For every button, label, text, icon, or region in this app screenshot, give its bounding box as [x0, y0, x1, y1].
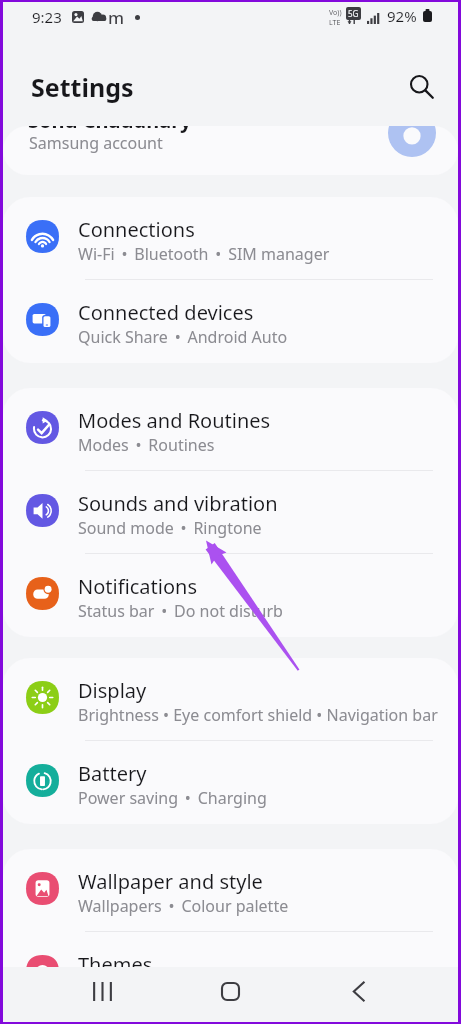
- staticText: Status bar • Do not disturb: [78, 600, 283, 622]
- button[interactable]: Themes: [3, 932, 458, 967]
- staticText: Modes and Routines: [78, 407, 271, 434]
- staticText: Quick Share • Android Auto: [78, 326, 288, 348]
- button[interactable]: Notifications: [3, 554, 458, 637]
- staticText: Themes: [78, 951, 153, 967]
- button[interactable]: Recent apps: [78, 967, 126, 1015]
- button[interactable]: Search: [397, 62, 445, 110]
- staticText: Connections: [78, 216, 195, 243]
- staticText: Wi-Fi • Bluetooth • SIM manager: [78, 243, 330, 265]
- staticText: 9:23: [32, 7, 62, 27]
- staticText: Sound mode • Ringtone: [78, 517, 262, 539]
- button[interactable]: Modes and Routines: [3, 388, 458, 471]
- staticText: Connected devices: [78, 299, 254, 326]
- staticText: Wallpapers • Colour palette: [78, 895, 289, 917]
- staticText: Vo)): [329, 8, 342, 18]
- button[interactable]: Display: [3, 658, 458, 741]
- staticText: m: [108, 6, 125, 29]
- button[interactable]: Connected devices: [3, 280, 458, 363]
- staticText: Samsung account: [29, 132, 163, 154]
- staticText: Wallpaper and style: [78, 868, 263, 895]
- staticText: Modes • Routines: [78, 434, 215, 456]
- button[interactable]: Sounds and vibration: [3, 471, 458, 554]
- button[interactable]: Home: [206, 967, 254, 1015]
- staticText: Sonu Chaudhary: [28, 126, 192, 134]
- staticText: Display: [78, 677, 147, 704]
- staticText: Settings: [31, 70, 134, 104]
- staticText: Battery: [78, 760, 147, 787]
- staticText: 92%: [387, 6, 417, 26]
- button[interactable]: Battery: [3, 741, 458, 824]
- staticText: Brightness • Eye comfort shield • Naviga…: [78, 704, 438, 726]
- button[interactable]: Wallpaper and style: [3, 849, 458, 932]
- staticText: Sounds and vibration: [78, 490, 278, 517]
- button[interactable]: Back: [335, 967, 383, 1015]
- staticText: Power saving • Charging: [78, 787, 267, 809]
- button[interactable]: Connections: [3, 197, 458, 280]
- button[interactable]: Sonu Chaudhary: [3, 126, 458, 175]
- staticText: Notifications: [78, 573, 197, 600]
- staticText: LTE: [329, 18, 341, 28]
- staticText: 5G: [348, 8, 359, 19]
